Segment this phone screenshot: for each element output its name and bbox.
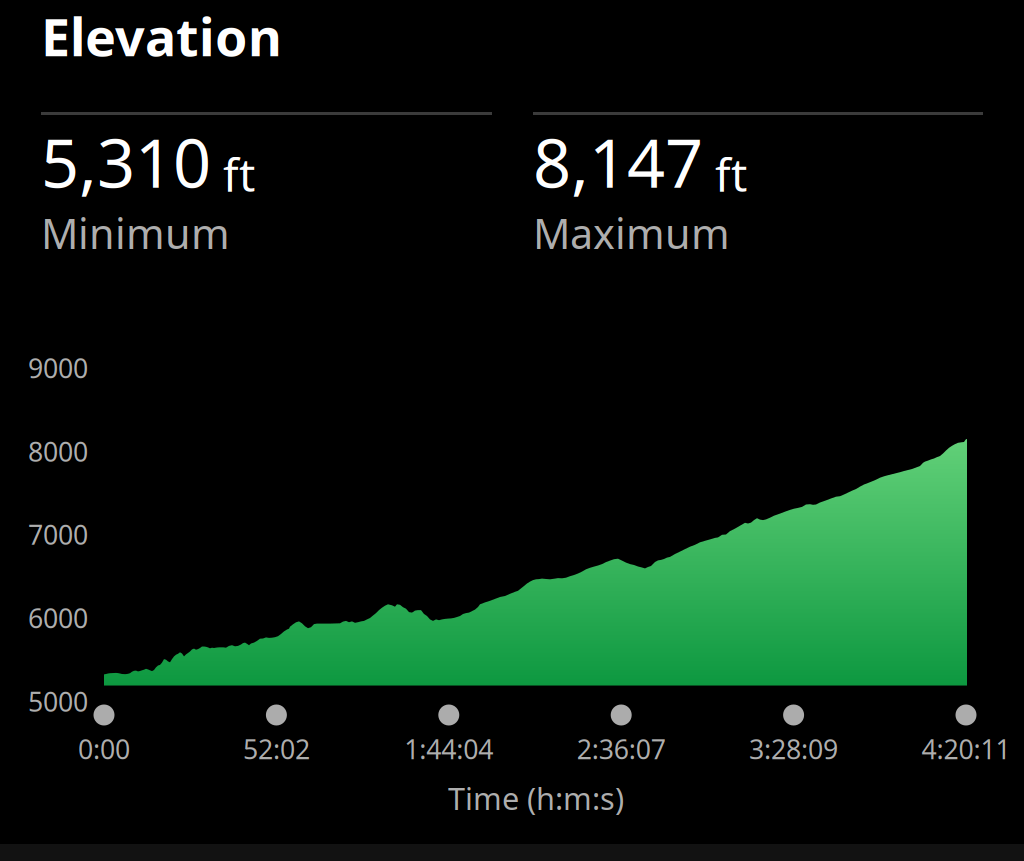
staticText: ft xyxy=(703,144,747,204)
staticText: Minimum xyxy=(41,206,230,260)
staticText: 7000 xyxy=(28,517,88,552)
staticText: 4:20:11 xyxy=(921,731,1010,767)
staticText: ft xyxy=(211,144,255,204)
staticText: 8000 xyxy=(28,434,88,469)
staticText: 2:36:07 xyxy=(577,731,666,767)
staticText: 6000 xyxy=(28,600,88,636)
staticText: Maximum xyxy=(533,206,730,260)
staticText: 3:28:09 xyxy=(749,731,838,767)
staticText: Time (h:m:s) xyxy=(448,778,624,818)
staticText: 8,147 xyxy=(533,118,703,206)
staticText: 52:02 xyxy=(243,731,310,767)
staticText: 0:00 xyxy=(78,731,130,767)
staticText: 5,310 xyxy=(41,118,211,206)
staticText: 9000 xyxy=(28,350,88,386)
staticText: 1:44:04 xyxy=(404,731,493,767)
staticText: Elevation xyxy=(41,1,282,71)
staticText: 5000 xyxy=(28,684,88,719)
